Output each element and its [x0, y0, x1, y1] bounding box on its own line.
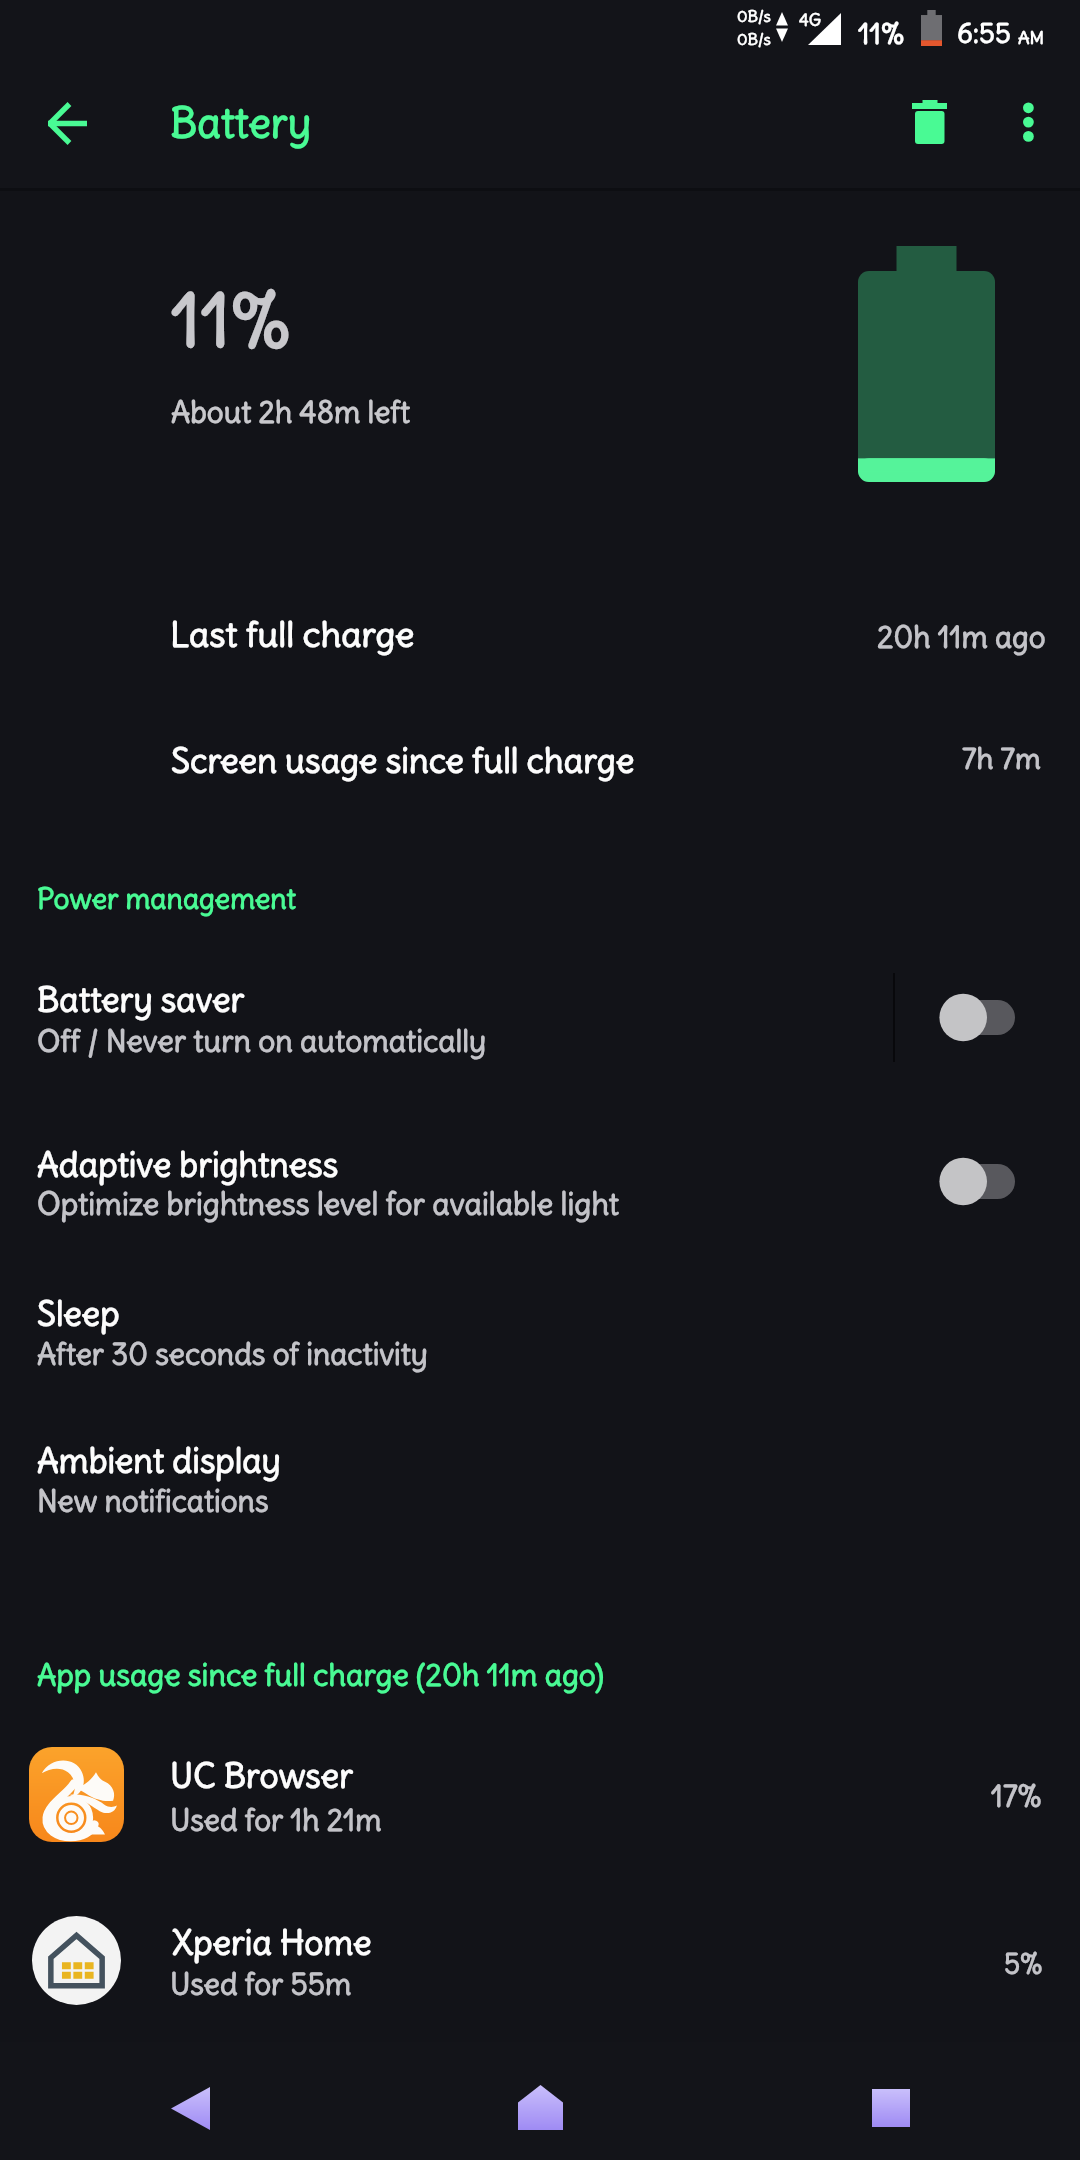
staticText: 11% [171, 273, 291, 367]
staticText: 7h 7m [962, 740, 1041, 777]
button[interactable]: UC Browser [0, 1740, 1080, 1850]
staticText: 0B/s [737, 29, 771, 49]
button[interactable]: Back [110, 2042, 270, 2160]
staticText: Used for 55m [170, 1965, 352, 2003]
button[interactable]: Recent apps [811, 2042, 971, 2160]
staticText: About 2h 48m left [171, 393, 411, 431]
button[interactable]: Battery saver [0, 958, 1080, 1076]
button[interactable]: Adaptive brightness [0, 1124, 1080, 1242]
staticText: App usage since full charge (20h 11m ago… [37, 1656, 604, 1694]
button[interactable]: Adaptive brightness switch, off [915, 1144, 1045, 1219]
button[interactable]: Delete battery stats [884, 78, 974, 168]
staticText: 0B/s [737, 6, 771, 26]
staticText: 6:55 [957, 16, 1011, 51]
staticText: Optimize brightness level for available … [37, 1185, 620, 1223]
staticText: Power management [37, 881, 297, 917]
button[interactable]: Navigate up [25, 81, 109, 165]
button[interactable]: Xperia Home [0, 1905, 1080, 2015]
staticText: Battery saver [37, 978, 245, 1021]
button[interactable]: Ambient display [0, 1420, 1080, 1538]
staticText: Off / Never turn on automatically [37, 1022, 487, 1060]
button[interactable]: Last full charge [0, 592, 1080, 704]
staticText: 17% [991, 1777, 1042, 1815]
staticText: UC Browser [170, 1754, 354, 1797]
button[interactable]: Screen usage since full charge [0, 716, 1080, 828]
staticText: 11% [858, 15, 905, 51]
staticText: Xperia Home [172, 1921, 372, 1964]
button[interactable]: Home [460, 2042, 620, 2160]
button[interactable]: Battery saver switch, off [915, 980, 1045, 1055]
staticText: Battery [170, 97, 312, 149]
staticText: New notifications [37, 1482, 269, 1520]
button[interactable]: More options [983, 78, 1073, 168]
staticText: AM [1018, 26, 1045, 49]
button[interactable]: Sleep [0, 1272, 1080, 1390]
staticText: Sleep [37, 1292, 120, 1335]
staticText: 20h 11m ago [877, 618, 1046, 656]
staticText: Screen usage since full charge [171, 739, 635, 782]
staticText: Last full charge [170, 612, 415, 657]
staticText: Ambient display [37, 1439, 281, 1482]
staticText: 4G [799, 9, 822, 30]
staticText: Used for 1h 21m [170, 1801, 382, 1839]
staticText: Adaptive brightness [37, 1143, 339, 1186]
staticText: 5% [1004, 1946, 1043, 1981]
staticText: After 30 seconds of inactivity [37, 1335, 428, 1373]
